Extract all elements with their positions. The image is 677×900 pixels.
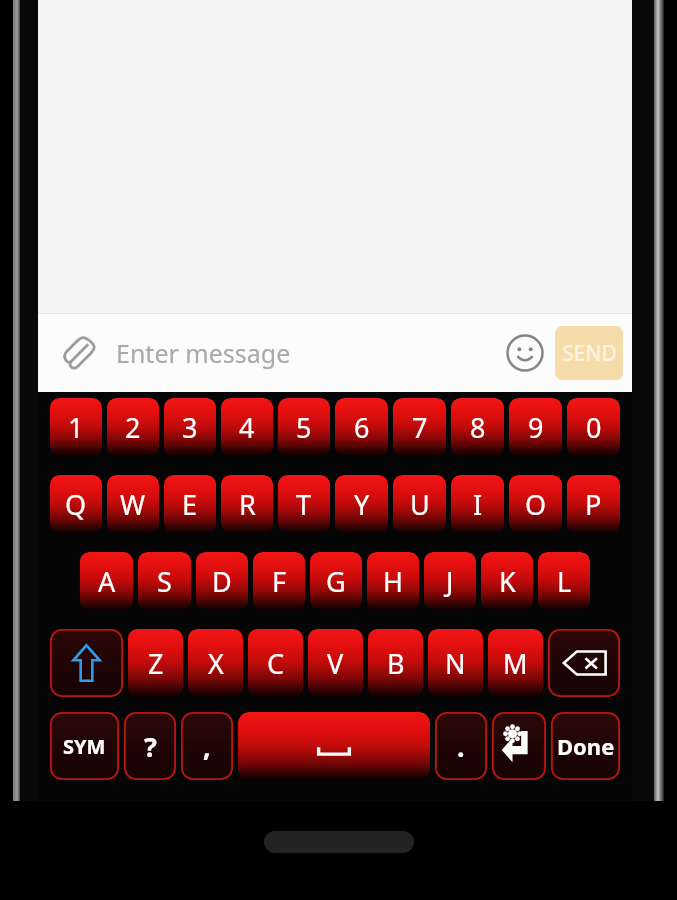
staticText: K (499, 563, 516, 600)
button[interactable]: W (107, 475, 159, 533)
button[interactable]: Space (238, 712, 430, 780)
staticText: N (445, 645, 466, 682)
staticText: . (457, 728, 465, 765)
staticText: Q (65, 486, 87, 523)
staticText: 5 (296, 409, 312, 446)
button[interactable]: . (435, 712, 487, 780)
button[interactable]: S (138, 552, 191, 610)
button[interactable]: P (567, 475, 620, 533)
button[interactable]: O (509, 475, 562, 533)
staticText: ? (144, 728, 157, 765)
staticText: 6 (354, 409, 370, 446)
staticText: J (446, 563, 454, 600)
staticText: F (272, 563, 287, 600)
button[interactable]: I (451, 475, 504, 533)
staticText: V (327, 645, 344, 682)
button[interactable]: 7 (393, 398, 446, 456)
button[interactable]: Y (335, 475, 388, 533)
staticText: X (208, 645, 224, 682)
button[interactable]: 4 (221, 398, 273, 456)
staticText: SYM (63, 733, 106, 760)
button[interactable]: , (181, 712, 233, 780)
button[interactable]: 8 (451, 398, 504, 456)
button[interactable]: H (367, 552, 419, 610)
staticText: SEND (562, 339, 617, 368)
staticText: O (525, 486, 547, 523)
staticText: E (182, 486, 198, 523)
button[interactable]: 5 (278, 398, 330, 456)
staticText: H (383, 563, 404, 600)
button[interactable]: SYM (50, 712, 119, 780)
button[interactable]: 9 (509, 398, 562, 456)
button[interactable]: C (248, 629, 303, 697)
button[interactable]: Backspace (548, 629, 620, 697)
button[interactable]: Done (551, 712, 620, 780)
button[interactable]: J (424, 552, 476, 610)
button[interactable]: A (80, 552, 133, 610)
staticText: M (503, 645, 528, 682)
staticText: 7 (412, 409, 428, 446)
staticText: W (120, 486, 146, 523)
staticText: I (473, 486, 483, 523)
staticText: A (98, 563, 116, 600)
staticText: 9 (528, 409, 544, 446)
staticText: 2 (125, 409, 141, 446)
button[interactable]: Q (50, 475, 102, 533)
staticText: Z (148, 645, 164, 682)
staticText: B (387, 645, 405, 682)
button[interactable]: V (308, 629, 363, 697)
button[interactable]: 3 (164, 398, 216, 456)
button[interactable]: Attach file (60, 332, 102, 374)
staticText: G (326, 563, 346, 600)
button[interactable]: G (310, 552, 362, 610)
button[interactable]: B (368, 629, 423, 697)
staticText: 8 (470, 409, 486, 446)
button[interactable]: T (278, 475, 330, 533)
staticText: 0 (586, 409, 602, 446)
staticText: T (296, 486, 312, 523)
button[interactable]: U (393, 475, 446, 533)
staticText: , (203, 728, 211, 765)
button[interactable]: N (428, 629, 483, 697)
staticText: C (267, 645, 285, 682)
button[interactable]: 0 (567, 398, 620, 456)
button[interactable]: ? (124, 712, 176, 780)
staticText: U (410, 486, 430, 523)
button[interactable]: K (481, 552, 533, 610)
staticText: L (557, 563, 572, 600)
button[interactable]: Emoji (501, 329, 549, 377)
button[interactable]: X (188, 629, 243, 697)
staticText: 3 (182, 409, 198, 446)
button[interactable]: L (538, 552, 590, 610)
button[interactable]: Keyboard settings and enter (492, 712, 546, 780)
button[interactable]: SEND (555, 326, 623, 380)
staticText: Y (354, 486, 370, 523)
button[interactable]: Z (128, 629, 183, 697)
staticText: S (157, 563, 172, 600)
staticText: Enter message (116, 336, 501, 370)
button[interactable]: 1 (50, 398, 102, 456)
button[interactable]: 2 (107, 398, 159, 456)
staticText: P (585, 486, 602, 523)
button[interactable]: D (196, 552, 248, 610)
button[interactable]: M (488, 629, 543, 697)
staticText: Done (557, 731, 615, 761)
staticText: 4 (239, 409, 255, 446)
staticText: D (212, 563, 232, 600)
staticText: R (239, 486, 256, 523)
button[interactable]: Shift (50, 629, 123, 697)
button[interactable]: E (164, 475, 216, 533)
button[interactable]: R (221, 475, 273, 533)
button[interactable]: F (253, 552, 305, 610)
button[interactable]: 6 (335, 398, 388, 456)
staticText: 1 (68, 409, 84, 446)
